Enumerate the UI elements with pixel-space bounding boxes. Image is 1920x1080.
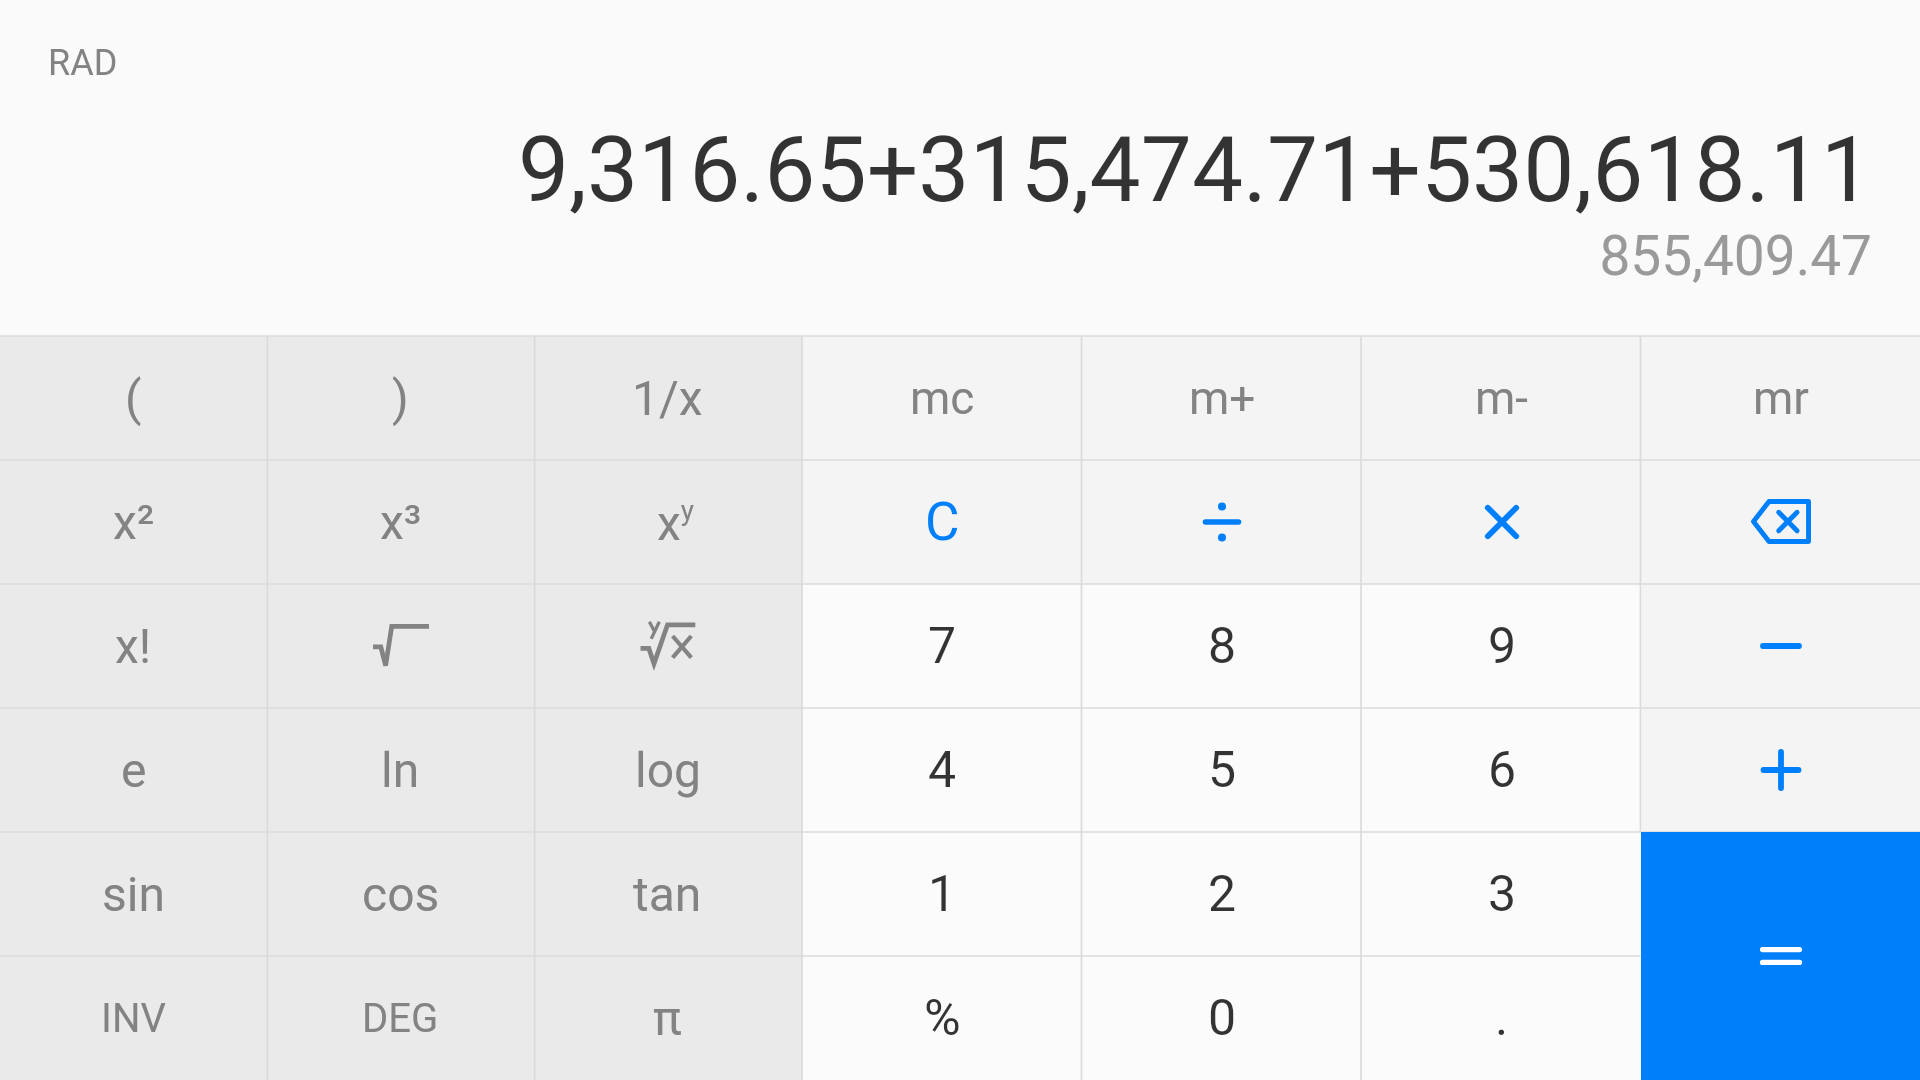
staticText: π xyxy=(653,990,682,1046)
button[interactable]: 9 xyxy=(1362,584,1642,708)
button[interactable]: . xyxy=(1362,956,1642,1080)
button[interactable]: 2 xyxy=(1082,832,1362,956)
button[interactable]: INV xyxy=(0,956,267,1080)
button[interactable]: xy xyxy=(534,460,801,584)
button[interactable]: mc xyxy=(802,336,1082,460)
button[interactable]: Divide xyxy=(1082,460,1362,584)
staticText: 1/x xyxy=(632,370,703,426)
button[interactable]: mr xyxy=(1642,336,1920,460)
button[interactable]: % xyxy=(802,956,1082,1080)
button[interactable]: 1/x xyxy=(534,336,801,460)
button[interactable]: 1 xyxy=(802,832,1082,956)
staticText: mr xyxy=(1753,371,1809,425)
button[interactable]: 4 xyxy=(802,708,1082,832)
button[interactable]: x³ xyxy=(267,460,534,584)
staticText: 855,409.47 xyxy=(0,224,1872,288)
button[interactable]: ln xyxy=(267,708,534,832)
button[interactable]: π xyxy=(534,956,801,1080)
staticText: m+ xyxy=(1189,371,1256,425)
staticText: x! xyxy=(115,618,152,674)
button[interactable]: 7 xyxy=(802,584,1082,708)
button[interactable]: C xyxy=(802,460,1082,584)
staticText: C xyxy=(925,491,960,553)
button[interactable]: Equals xyxy=(1641,832,1920,1080)
staticText: 0 xyxy=(1208,989,1237,1048)
button[interactable]: 3 xyxy=(1362,832,1642,956)
staticText: sin xyxy=(102,866,165,922)
button[interactable]: Plus xyxy=(1642,708,1920,832)
staticText: ( xyxy=(125,370,142,426)
staticText: 4 xyxy=(928,741,957,800)
button[interactable]: RAD xyxy=(48,42,118,84)
staticText: 5 xyxy=(1208,741,1237,800)
staticText: m- xyxy=(1475,371,1529,425)
staticText: ln xyxy=(381,742,420,798)
staticText: 1 xyxy=(928,865,957,924)
button[interactable]: sin xyxy=(0,832,267,956)
staticText: 3 xyxy=(1488,865,1517,924)
staticText: DEG xyxy=(362,995,439,1042)
button[interactable]: 6 xyxy=(1362,708,1642,832)
button[interactable]: 0 xyxy=(1082,956,1362,1080)
button[interactable]: Minus xyxy=(1642,584,1920,708)
button[interactable]: Square root xyxy=(267,584,534,708)
staticText: . xyxy=(1495,989,1509,1048)
staticText: log xyxy=(635,742,701,798)
button[interactable]: Backspace xyxy=(1642,460,1920,584)
button[interactable]: m- xyxy=(1362,336,1642,460)
staticText: x³ xyxy=(380,494,422,550)
staticText: ) xyxy=(392,370,409,426)
button[interactable]: tan xyxy=(534,832,801,956)
button[interactable]: ) xyxy=(267,336,534,460)
staticText: xy xyxy=(657,494,695,551)
button[interactable]: log xyxy=(534,708,801,832)
staticText: INV xyxy=(101,995,166,1042)
button[interactable]: cos xyxy=(267,832,534,956)
staticText: e xyxy=(121,742,147,798)
staticText: 7 xyxy=(928,617,957,676)
button[interactable]: 8 xyxy=(1082,584,1362,708)
button[interactable]: DEG xyxy=(267,956,534,1080)
staticText: 9,316.65+315,474.71+530,618.11 xyxy=(0,117,1872,224)
staticText: % xyxy=(924,989,961,1048)
staticText: 8 xyxy=(1208,617,1237,676)
button[interactable]: Nth root xyxy=(534,584,801,708)
button[interactable]: m+ xyxy=(1082,336,1362,460)
button[interactable]: x! xyxy=(0,584,267,708)
staticText: 6 xyxy=(1488,741,1517,800)
button[interactable]: Multiply xyxy=(1362,460,1642,584)
staticText: 9 xyxy=(1488,617,1517,676)
staticText: x² xyxy=(113,494,155,550)
button[interactable]: x² xyxy=(0,460,267,584)
button[interactable]: 5 xyxy=(1082,708,1362,832)
button[interactable]: e xyxy=(0,708,267,832)
staticText: 2 xyxy=(1208,865,1237,924)
button[interactable]: ( xyxy=(0,336,267,460)
staticText: cos xyxy=(362,866,440,922)
staticText: tan xyxy=(633,866,702,922)
staticText: mc xyxy=(910,371,975,425)
